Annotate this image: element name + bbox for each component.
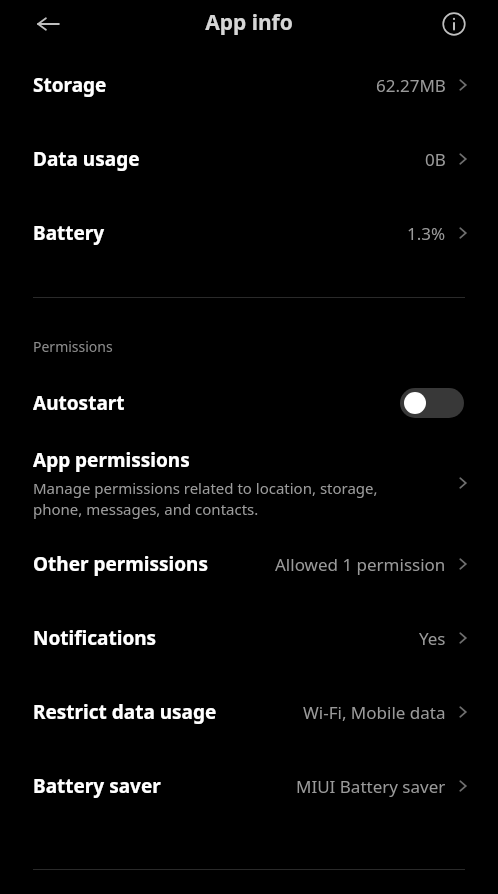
other: Autostart toggle, off	[400, 388, 464, 418]
staticText: Allowed 1 permission	[275, 553, 446, 576]
button[interactable]: Storage	[0, 62, 498, 108]
button[interactable]: Data usage	[0, 136, 498, 182]
button[interactable]: Autostart	[0, 385, 498, 421]
staticText: Manage permissions related to location, …	[33, 478, 378, 519]
staticText: Autostart	[33, 390, 125, 416]
button[interactable]: Back	[26, 2, 70, 46]
button[interactable]: App details	[433, 3, 475, 45]
staticText: App permissions	[33, 447, 190, 473]
button[interactable]: Battery	[0, 210, 498, 256]
staticText: 1.3%	[407, 222, 446, 245]
staticText: App info	[205, 8, 293, 37]
staticText: Data usage	[33, 146, 140, 172]
staticText: Restrict data usage	[33, 699, 217, 725]
staticText: Permissions	[33, 337, 113, 356]
staticText: Other permissions	[33, 551, 208, 577]
staticText: Wi-Fi, Mobile data	[303, 701, 446, 724]
button[interactable]: Restrict data usage	[0, 692, 498, 732]
button[interactable]: Other permissions	[0, 544, 498, 584]
staticText: 62.27MB	[376, 74, 446, 97]
button[interactable]: Battery saver	[0, 766, 498, 806]
staticText: Storage	[33, 72, 107, 98]
staticText: Battery saver	[33, 773, 161, 799]
staticText: Notifications	[33, 625, 157, 651]
button[interactable]: App permissions	[0, 447, 498, 519]
staticText: Yes	[419, 627, 446, 650]
staticText: 0B	[425, 148, 446, 171]
button[interactable]: Notifications	[0, 618, 498, 658]
staticText: MIUI Battery saver	[296, 775, 446, 798]
staticText: Battery	[33, 220, 105, 246]
